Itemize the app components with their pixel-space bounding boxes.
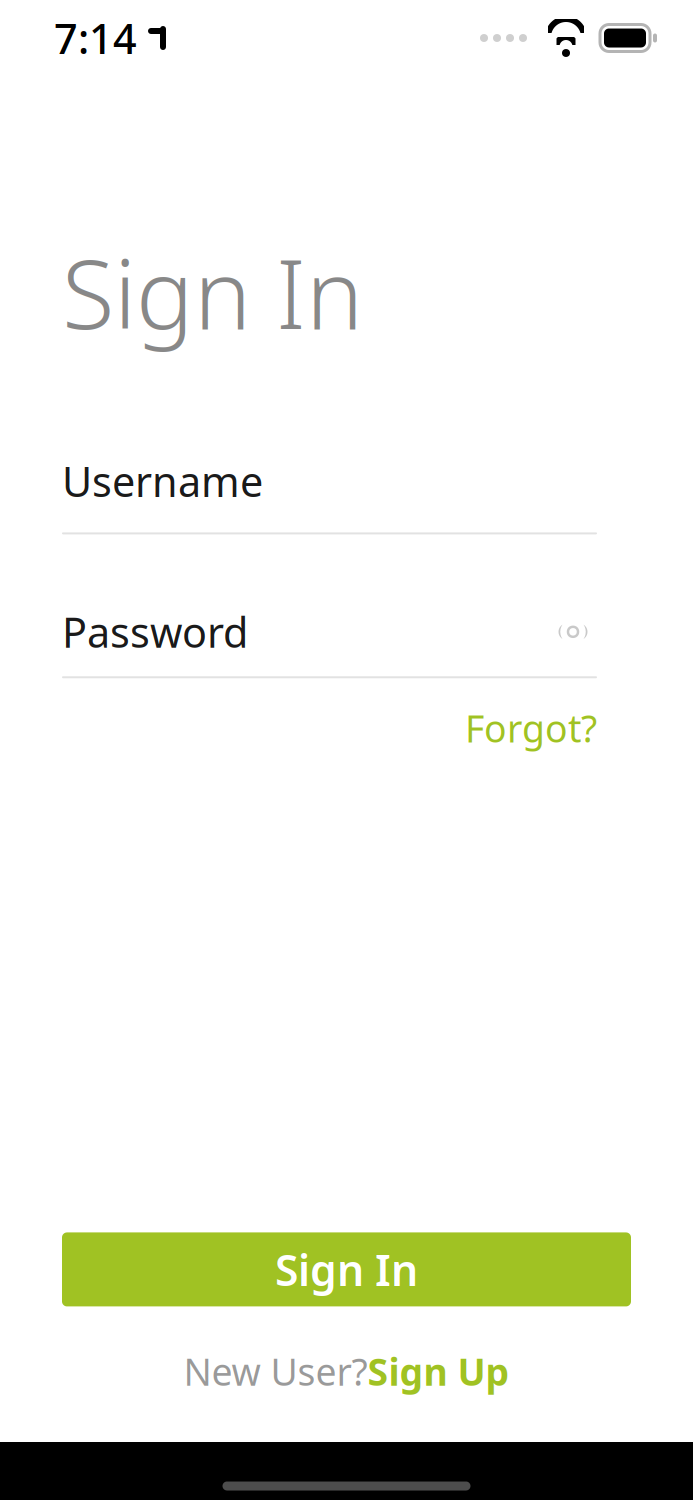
button[interactable]: Show password [549,611,597,653]
staticText: Password [62,604,248,659]
staticText: Sign Up [367,1346,509,1396]
button[interactable]: New User? [183,1336,509,1406]
staticText: Forgot? [465,703,597,753]
button[interactable]: Sign In [62,1232,631,1306]
staticText: New User? [183,1346,367,1396]
button[interactable]: Forgot? [465,698,597,758]
staticText: Sign In [62,228,363,355]
staticText: Sign In [275,1241,418,1298]
staticText: Username [62,453,263,508]
staticText: 7:14 [54,11,137,65]
